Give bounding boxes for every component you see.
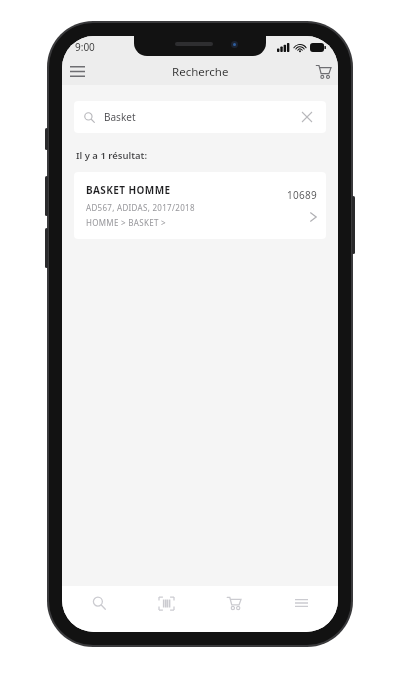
staticText: AD567, ADIDAS, 2017/2018: [86, 202, 195, 213]
button[interactable]: Menu: [62, 58, 92, 85]
staticText: Recherche: [172, 64, 229, 80]
staticText: Il y a 1 résultat:: [76, 149, 148, 162]
button[interactable]: Cart: [204, 586, 264, 620]
button[interactable]: Basket: [74, 101, 326, 133]
button[interactable]: More: [271, 586, 331, 620]
button[interactable]: Search: [69, 586, 129, 620]
button[interactable]: Clear search: [298, 108, 316, 126]
button[interactable]: BASKET HOMME: [74, 172, 326, 239]
button[interactable]: Scan barcode: [136, 586, 196, 620]
staticText: BASKET HOMME: [86, 183, 171, 197]
staticText: 10689: [287, 188, 318, 202]
button[interactable]: Cart: [308, 58, 338, 85]
staticText: HOMME > BASKET >: [86, 217, 166, 228]
staticText: 9:00: [75, 40, 95, 54]
staticText: Basket: [104, 110, 136, 124]
